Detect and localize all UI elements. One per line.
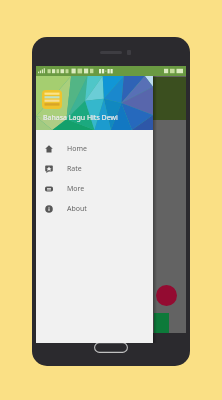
- button[interactable]: Play: [156, 285, 177, 306]
- button[interactable]: Home: [36, 139, 153, 159]
- staticText: Bahasa Lagu Hits Dewi: [43, 113, 118, 123]
- button[interactable]: About: [36, 199, 153, 219]
- staticText: About: [67, 204, 87, 214]
- button[interactable]: More: [36, 179, 153, 199]
- button[interactable]: Rate: [36, 159, 153, 179]
- staticText: Rate: [67, 164, 82, 174]
- staticText: Home: [67, 144, 87, 154]
- staticText: More: [67, 184, 85, 194]
